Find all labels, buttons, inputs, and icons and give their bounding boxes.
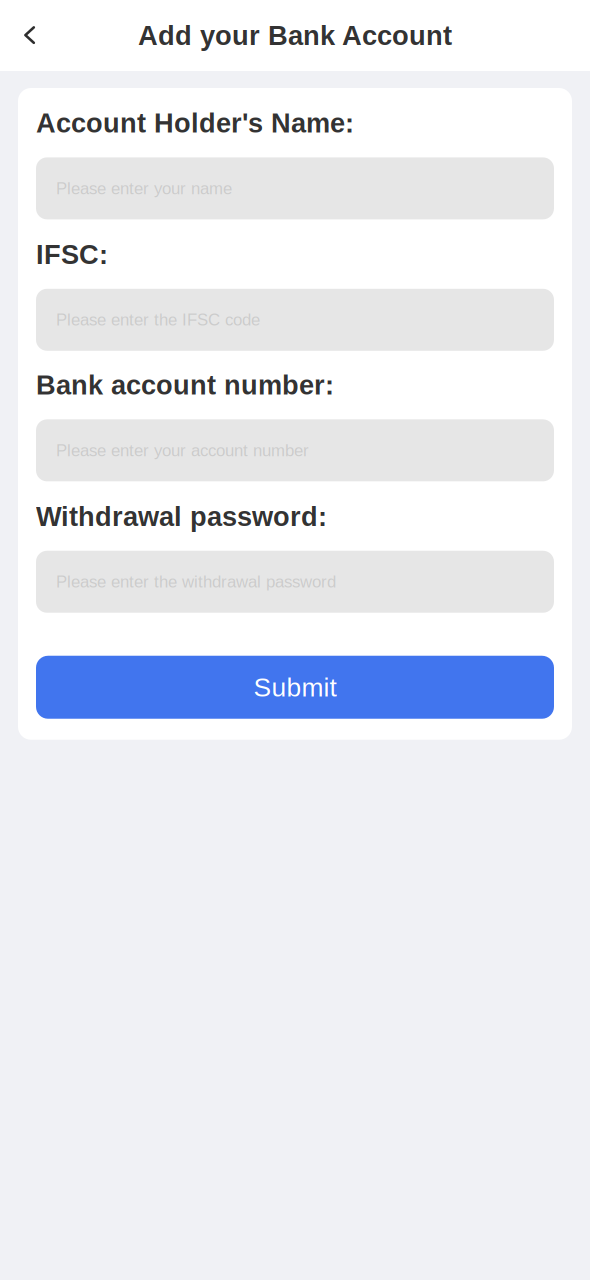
staticText: Add your Bank Account bbox=[138, 20, 452, 51]
button[interactable]: Submit bbox=[36, 656, 554, 719]
button[interactable]: Please enter the IFSC code bbox=[36, 289, 554, 351]
button[interactable]: Please enter your name bbox=[36, 157, 554, 219]
staticText: Submit bbox=[253, 672, 336, 702]
staticText: Withdrawal password: bbox=[36, 501, 327, 532]
staticText: Please enter your account number bbox=[56, 441, 309, 460]
staticText: Please enter your name bbox=[56, 179, 232, 198]
staticText: Bank account number: bbox=[36, 370, 334, 400]
staticText: Please enter the withdrawal password bbox=[56, 572, 336, 591]
staticText: Account Holder's Name: bbox=[36, 108, 354, 138]
staticText: Please enter the IFSC code bbox=[56, 310, 260, 329]
button[interactable]: Please enter the withdrawal password bbox=[36, 551, 554, 613]
staticText: IFSC: bbox=[36, 239, 108, 270]
button[interactable]: Please enter your account number bbox=[36, 419, 554, 481]
button[interactable]: Back bbox=[0, 2, 56, 69]
